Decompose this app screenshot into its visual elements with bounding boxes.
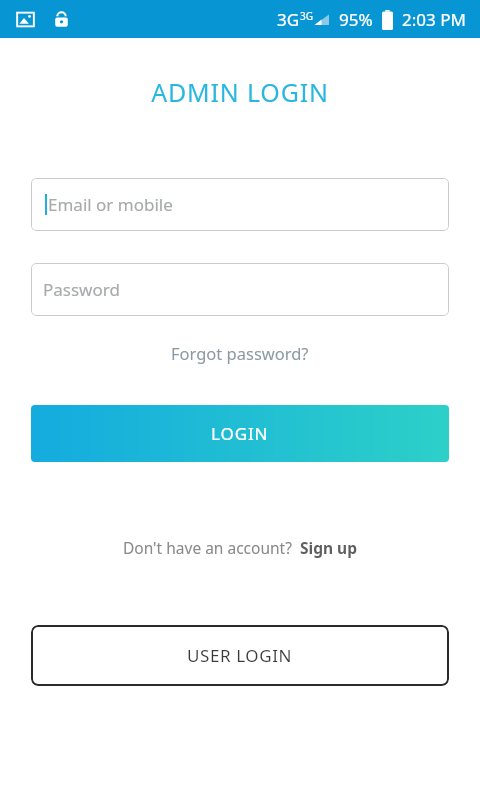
button[interactable]: LOGIN xyxy=(31,405,449,462)
staticText: 3G xyxy=(300,9,313,23)
other: Battery 95 percent xyxy=(382,10,393,30)
staticText: 3G xyxy=(277,8,300,31)
button[interactable]: USER LOGIN xyxy=(31,625,449,686)
other: Screen locked xyxy=(52,10,71,29)
staticText: Email or mobile xyxy=(48,193,173,216)
other: Screenshot xyxy=(16,10,35,29)
staticText: ADMIN LOGIN xyxy=(0,75,480,109)
staticText: Password xyxy=(43,278,120,301)
staticText: Don't have an account? xyxy=(123,537,292,558)
button[interactable]: Don't have an account? xyxy=(0,531,480,564)
staticText: USER LOGIN xyxy=(187,644,293,667)
button[interactable]: Password xyxy=(31,263,449,316)
staticText: 95% xyxy=(339,8,373,31)
staticText: LOGIN xyxy=(211,422,269,445)
button[interactable]: Email or mobile xyxy=(31,178,449,231)
staticText: 2:03 PM xyxy=(402,8,466,31)
staticText: Sign up xyxy=(300,537,357,558)
staticText: Forgot password? xyxy=(171,342,309,364)
button[interactable]: Forgot password? xyxy=(0,336,480,370)
